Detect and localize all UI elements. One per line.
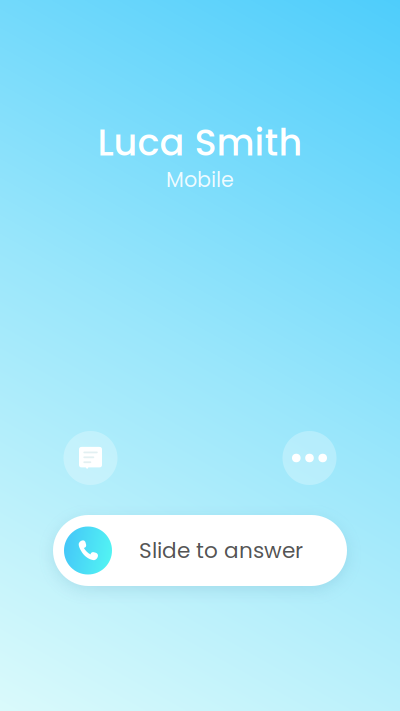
button[interactable]: More options [282,431,336,485]
button[interactable]: Send message [63,431,117,485]
staticText: Mobile [166,165,234,194]
staticText: Luca Smith [97,117,302,168]
button[interactable]: Slide to answer [53,515,347,586]
staticText: Slide to answer [139,535,303,566]
